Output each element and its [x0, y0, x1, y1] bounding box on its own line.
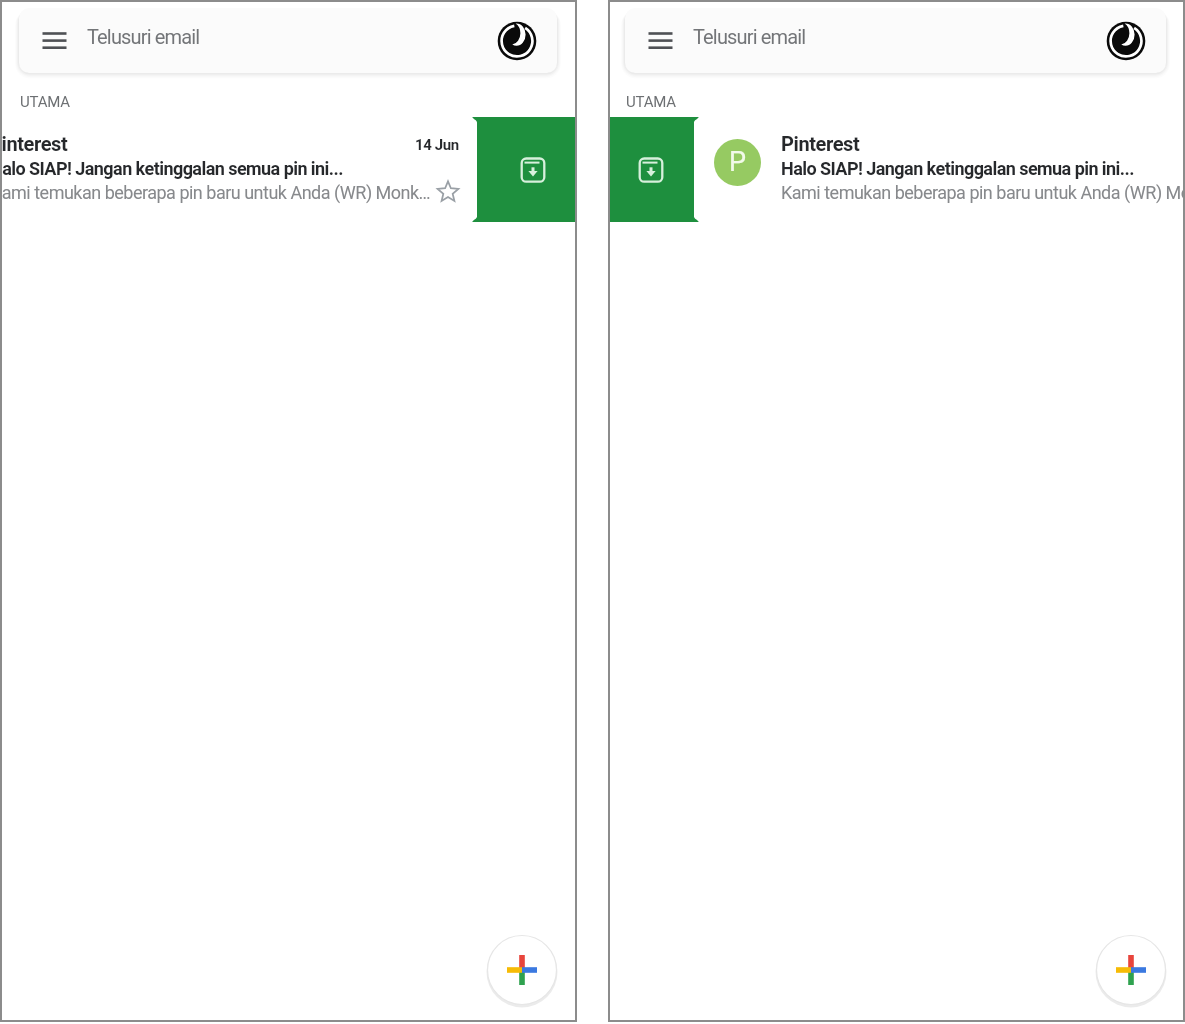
button[interactable]: Account profile	[497, 21, 537, 61]
button[interactable]: P	[714, 139, 761, 186]
button[interactable]: Compose new email	[1095, 935, 1167, 1007]
button[interactable]: Open navigation drawer	[625, 8, 1166, 73]
other: Archive	[638, 157, 664, 183]
button[interactable]: Star	[436, 179, 460, 203]
staticText: Halo SIAP! Jangan ketinggalan semua pin …	[781, 158, 1134, 179]
staticText: Kami temukan beberapa pin baru untuk And…	[781, 182, 1183, 203]
other: Archive	[520, 157, 546, 183]
staticText: 14 Jun	[415, 136, 459, 154]
button[interactable]: Compose new email	[486, 935, 558, 1007]
button[interactable]: Account profile	[1106, 21, 1146, 61]
staticText: Halo SIAP! Jangan ketinggalan semua pin …	[2, 158, 343, 179]
staticText: P	[729, 146, 747, 178]
staticText: Pinterest	[2, 132, 68, 155]
button[interactable]: Open navigation drawer	[19, 8, 557, 73]
button[interactable]: Open navigation drawer	[41, 27, 68, 54]
staticText: UTAMA	[20, 93, 70, 111]
staticText: UTAMA	[626, 93, 676, 111]
staticText: Telusuri email	[87, 25, 200, 48]
staticText: Telusuri email	[693, 25, 806, 48]
staticText: Pinterest	[781, 132, 860, 155]
staticText: Kami temukan beberapa pin baru untuk And…	[2, 182, 432, 203]
button[interactable]: Open navigation drawer	[647, 27, 674, 54]
